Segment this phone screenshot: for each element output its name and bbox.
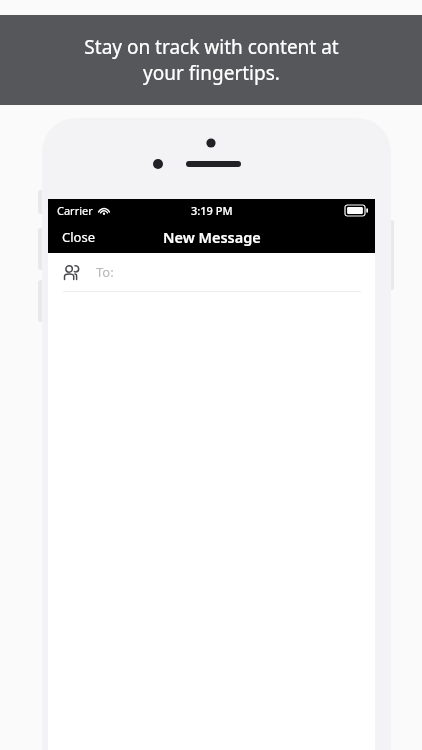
staticText: New Message [163, 227, 261, 247]
button[interactable]: Add recipients [48, 253, 375, 291]
staticText: Stay on track with content at [84, 34, 339, 60]
button[interactable]: Close [48, 221, 109, 253]
staticText: To: [96, 263, 114, 281]
staticText: Close [62, 228, 95, 246]
staticText: 3:19 PM [191, 203, 233, 218]
other: Add recipients [63, 265, 80, 280]
staticText: Carrier [57, 203, 93, 218]
staticText: your fingertips. [143, 60, 280, 86]
